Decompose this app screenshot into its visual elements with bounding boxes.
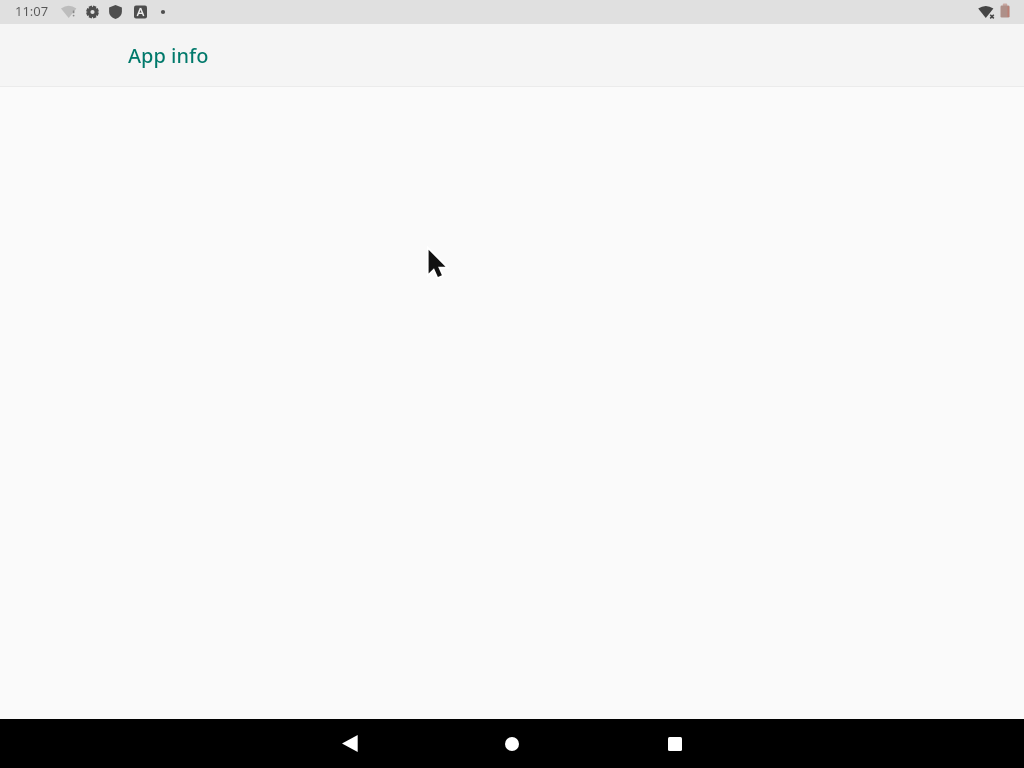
button[interactable]: [326, 719, 374, 768]
staticText: 11:07: [15, 2, 49, 20]
staticText: App info: [128, 42, 209, 69]
button[interactable]: [488, 719, 536, 768]
button[interactable]: [651, 719, 699, 768]
